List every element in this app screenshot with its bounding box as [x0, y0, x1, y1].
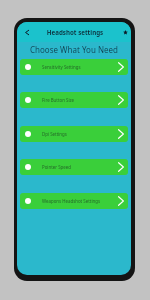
staticText: Sensitivity Settings — [42, 64, 118, 70]
button[interactable]: Pointer Speed — [20, 159, 128, 175]
button[interactable]: Weapons Headshot Settings — [20, 193, 128, 209]
staticText: Weapons Headshot Settings — [42, 198, 118, 204]
staticText: Choose What You Need — [17, 44, 131, 55]
staticText: Dpi Settings — [42, 131, 118, 137]
button[interactable]: Favorite — [120, 22, 131, 42]
staticText: Headshot settings — [18, 28, 131, 36]
button[interactable]: Back — [19, 22, 35, 42]
button[interactable]: Sensitivity Settings — [20, 59, 128, 75]
staticText: Fire Button Size — [42, 97, 118, 103]
button[interactable]: Fire Button Size — [20, 92, 128, 108]
staticText: Pointer Speed — [42, 164, 118, 170]
button[interactable]: Dpi Settings — [20, 126, 128, 142]
